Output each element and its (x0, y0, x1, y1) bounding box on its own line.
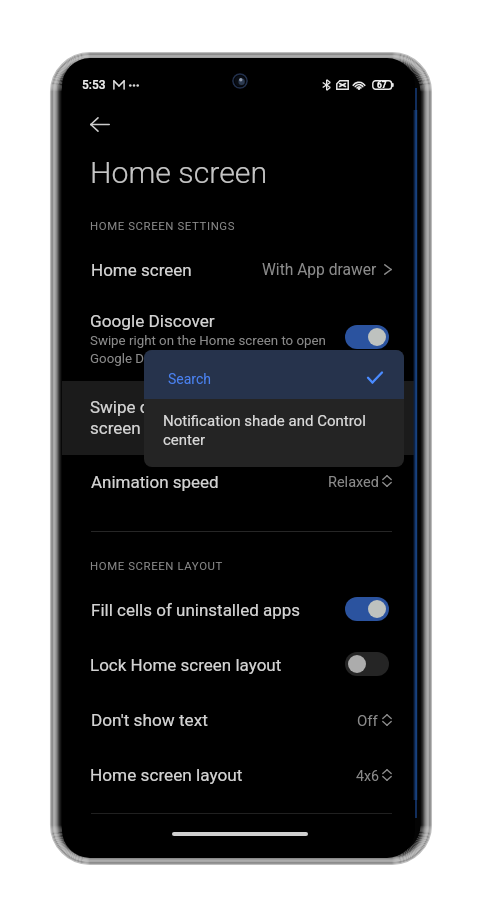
staticText: HOME SCREEN SETTINGS (90, 219, 236, 232)
staticText: 5:53 (82, 78, 106, 92)
button[interactable]: Back (78, 107, 122, 141)
staticText: Home screen layout (90, 765, 243, 785)
staticText: Notification shade and Control (163, 412, 366, 430)
staticText: Google Discover (90, 351, 187, 367)
staticText: Home screen (91, 260, 192, 280)
button[interactable]: Switch on (345, 325, 389, 349)
button[interactable] (62, 596, 415, 636)
staticText: HOME SCREEN LAYOUT (90, 559, 223, 572)
button[interactable]: Switch off (345, 652, 389, 676)
staticText: 4x6 (356, 768, 379, 785)
staticText: Swipe right on the Home screen to open (90, 333, 326, 349)
staticText: Home screen (90, 155, 268, 191)
staticText: center (163, 431, 206, 449)
button[interactable] (144, 350, 404, 399)
staticText: 67 (377, 80, 387, 90)
button[interactable] (144, 399, 404, 467)
button[interactable] (62, 651, 415, 691)
staticText: screen (90, 418, 141, 438)
button[interactable] (62, 250, 415, 292)
staticText: Animation speed (91, 472, 219, 492)
button[interactable] (62, 706, 415, 746)
button[interactable] (62, 303, 415, 371)
staticText: Fill cells of uninstalled apps (91, 600, 301, 620)
staticText: Search (168, 371, 212, 387)
button[interactable] (62, 468, 415, 508)
button[interactable]: Switch on (345, 597, 389, 621)
button[interactable] (62, 761, 415, 801)
staticText: Google Discover (90, 311, 215, 331)
staticText: Relaxed (328, 474, 379, 491)
button[interactable] (62, 381, 415, 455)
staticText: Lock Home screen layout (90, 655, 282, 675)
staticText: Off (357, 712, 378, 730)
staticText: Don't show text (91, 710, 208, 730)
staticText: With App drawer (262, 261, 377, 279)
staticText: Swipe down gesture on Home (90, 397, 316, 417)
